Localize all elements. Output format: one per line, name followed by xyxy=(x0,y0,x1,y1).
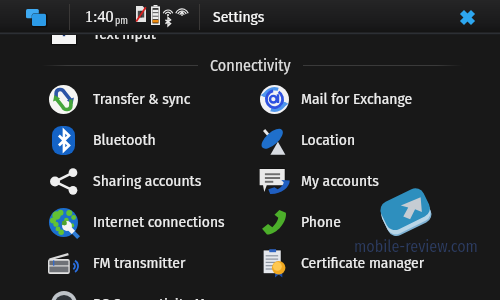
staticText: Text input xyxy=(93,25,156,44)
button[interactable]: My accounts xyxy=(247,161,461,201)
staticText: Connectivity xyxy=(210,56,291,75)
button[interactable]: Sharing accounts xyxy=(34,161,248,201)
button[interactable]: Certificate manager xyxy=(247,243,461,283)
button[interactable]: Close xyxy=(449,0,485,34)
staticText: Certificate manager xyxy=(301,254,425,273)
staticText: mobile-review.com xyxy=(354,237,478,256)
button[interactable]: Mail for Exchange xyxy=(247,79,461,119)
staticText: Transfer & sync xyxy=(93,90,191,109)
button[interactable]: PC Connectivity Mana xyxy=(34,284,248,300)
staticText: My accounts xyxy=(301,172,379,191)
staticText: Settings xyxy=(213,8,265,27)
staticText: Location xyxy=(301,131,356,150)
button[interactable]: Transfer & sync xyxy=(34,79,248,119)
button[interactable]: Task switcher xyxy=(18,0,54,34)
staticText: Bluetooth xyxy=(93,131,156,150)
button[interactable]: Bluetooth xyxy=(34,120,248,160)
button[interactable]: Internet connections xyxy=(34,202,248,242)
staticText: Internet connections xyxy=(93,213,225,232)
staticText: FM transmitter xyxy=(93,254,186,273)
staticText: 1:40 xyxy=(85,8,114,26)
button[interactable]: Phone xyxy=(247,202,461,242)
staticText: Sharing accounts xyxy=(93,172,202,191)
staticText: Mail for Exchange xyxy=(301,90,413,109)
staticText: Phone xyxy=(301,213,341,232)
button[interactable]: Text input xyxy=(34,14,248,54)
staticText: PC Connectivity Mana xyxy=(93,295,229,300)
button[interactable]: FM transmitter xyxy=(34,243,248,283)
button[interactable]: Location xyxy=(247,120,461,160)
staticText: pm xyxy=(115,15,129,27)
